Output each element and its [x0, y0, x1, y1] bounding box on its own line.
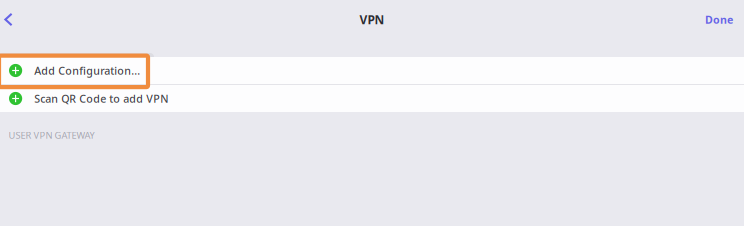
- staticText: USER VPN GATEWAY: [8, 129, 94, 141]
- staticText: VPN: [359, 11, 384, 27]
- staticText: Scan QR Code to add VPN: [34, 91, 168, 106]
- button[interactable]: Add Configuration...: [0, 57, 744, 84]
- staticText: Add Configuration...: [34, 63, 140, 78]
- button[interactable]: Back: [0, 6, 22, 33]
- staticText: Done: [705, 12, 733, 27]
- button[interactable]: Scan QR Code to add VPN: [0, 85, 744, 112]
- button[interactable]: Done: [695, 4, 744, 35]
